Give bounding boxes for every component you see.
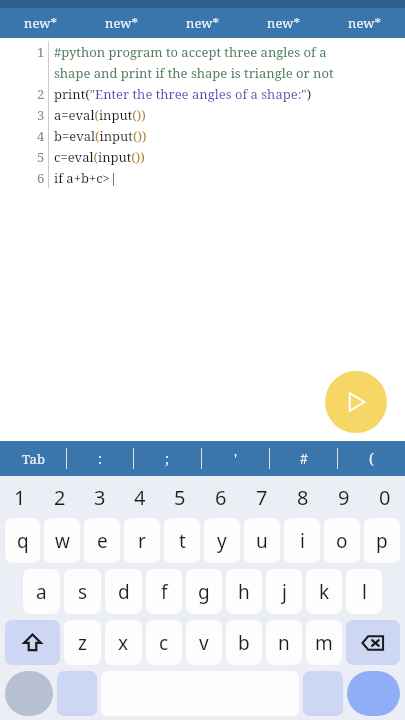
staticText: w xyxy=(55,528,70,554)
staticText: 6 xyxy=(215,484,227,511)
staticText: e xyxy=(97,528,108,554)
button[interactable]: 6 xyxy=(200,480,241,514)
button[interactable]: new* xyxy=(0,8,81,38)
button[interactable]: t xyxy=(164,518,200,563)
staticText: : xyxy=(98,449,103,468)
button[interactable]: 7 xyxy=(241,480,282,514)
staticText: 3 xyxy=(94,484,106,511)
staticText: a=eval(input()) xyxy=(54,106,146,124)
button[interactable]: p xyxy=(364,518,400,563)
button[interactable]: r xyxy=(124,518,160,563)
staticText: i xyxy=(300,528,305,554)
staticText: 1 xyxy=(14,484,26,511)
staticText: 5 xyxy=(174,484,186,511)
button[interactable]: n xyxy=(266,620,302,665)
button[interactable]: o xyxy=(324,518,360,563)
button[interactable]: l xyxy=(346,569,382,614)
staticText: g xyxy=(198,579,210,605)
staticText: z xyxy=(78,630,87,656)
button[interactable]: 5 xyxy=(160,480,200,514)
button[interactable]: 1 xyxy=(0,480,40,514)
staticText: y xyxy=(217,528,227,554)
staticText: o xyxy=(336,528,348,554)
button[interactable]: Backspace xyxy=(346,620,400,665)
button[interactable]: b xyxy=(226,620,262,665)
button[interactable]: u xyxy=(244,518,280,563)
staticText: new* xyxy=(267,14,301,32)
staticText: Tab xyxy=(22,450,45,468)
staticText: ' xyxy=(234,449,238,468)
button[interactable]: new* xyxy=(243,8,324,38)
button[interactable]: i xyxy=(284,518,320,563)
staticText: print("Enter the three angles of a shape… xyxy=(54,85,312,103)
staticText: x xyxy=(118,630,129,656)
staticText: c xyxy=(159,630,169,656)
staticText: 4 xyxy=(37,127,45,145)
staticText: shape and print if the shape is triangle… xyxy=(54,64,334,82)
button[interactable]: new* xyxy=(162,8,243,38)
staticText: new* xyxy=(348,14,382,32)
button[interactable]: Comma xyxy=(57,671,97,716)
staticText: c=eval(input()) xyxy=(54,148,145,166)
button[interactable]: s xyxy=(64,569,101,614)
staticText: b xyxy=(238,630,250,656)
button[interactable]: 9 xyxy=(323,480,364,514)
button[interactable]: w xyxy=(44,518,80,563)
button[interactable]: new* xyxy=(324,8,405,38)
button[interactable]: h xyxy=(226,569,262,614)
button[interactable]: ' xyxy=(202,441,269,476)
button[interactable]: ; xyxy=(134,441,201,476)
staticText: f xyxy=(161,579,168,605)
staticText: 7 xyxy=(256,484,268,511)
button[interactable]: : xyxy=(67,441,133,476)
button[interactable]: f xyxy=(146,569,182,614)
button[interactable]: g xyxy=(186,569,222,614)
staticText: u xyxy=(256,528,268,554)
button[interactable]: j xyxy=(266,569,302,614)
button[interactable]: Tab xyxy=(0,441,66,476)
button[interactable]: new* xyxy=(81,8,162,38)
button[interactable]: y xyxy=(204,518,240,563)
button[interactable]: 2 xyxy=(40,480,80,514)
staticText: ( xyxy=(369,449,374,468)
staticText: new* xyxy=(105,14,139,32)
button[interactable]: a xyxy=(23,569,60,614)
button[interactable]: ( xyxy=(338,441,405,476)
button[interactable]: 0 xyxy=(364,480,405,514)
button[interactable]: 4 xyxy=(120,480,160,514)
button[interactable]: z xyxy=(64,620,101,665)
button[interactable]: c xyxy=(146,620,182,665)
button[interactable]: Enter xyxy=(347,671,400,716)
button[interactable]: v xyxy=(186,620,222,665)
button[interactable]: Shift xyxy=(5,620,60,665)
staticText: r xyxy=(138,528,146,554)
staticText: 5 xyxy=(37,148,45,166)
button[interactable]: Period xyxy=(303,671,343,716)
staticText: s xyxy=(78,579,88,605)
staticText: 8 xyxy=(297,484,309,511)
staticText: m xyxy=(315,630,333,656)
button[interactable]: e xyxy=(84,518,120,563)
staticText: 9 xyxy=(338,484,350,511)
staticText: 2 xyxy=(54,484,66,511)
button[interactable]: 8 xyxy=(282,480,323,514)
button[interactable]: k xyxy=(306,569,342,614)
button[interactable]: q xyxy=(5,518,40,563)
button[interactable]: Symbols xyxy=(5,671,53,716)
staticText: l xyxy=(362,579,367,605)
staticText: t xyxy=(179,528,186,554)
button[interactable]: x xyxy=(105,620,142,665)
staticText: d xyxy=(118,579,130,605)
staticText: n xyxy=(278,630,290,656)
staticText: q xyxy=(17,528,29,554)
button[interactable]: 3 xyxy=(80,480,120,514)
button[interactable]: # xyxy=(270,441,337,476)
staticText: 6 xyxy=(37,169,45,187)
button[interactable]: d xyxy=(105,569,142,614)
staticText: k xyxy=(319,579,330,605)
button[interactable]: m xyxy=(306,620,342,665)
staticText: j xyxy=(282,579,287,605)
button[interactable]: Run xyxy=(325,371,387,433)
staticText: 3 xyxy=(37,106,45,124)
